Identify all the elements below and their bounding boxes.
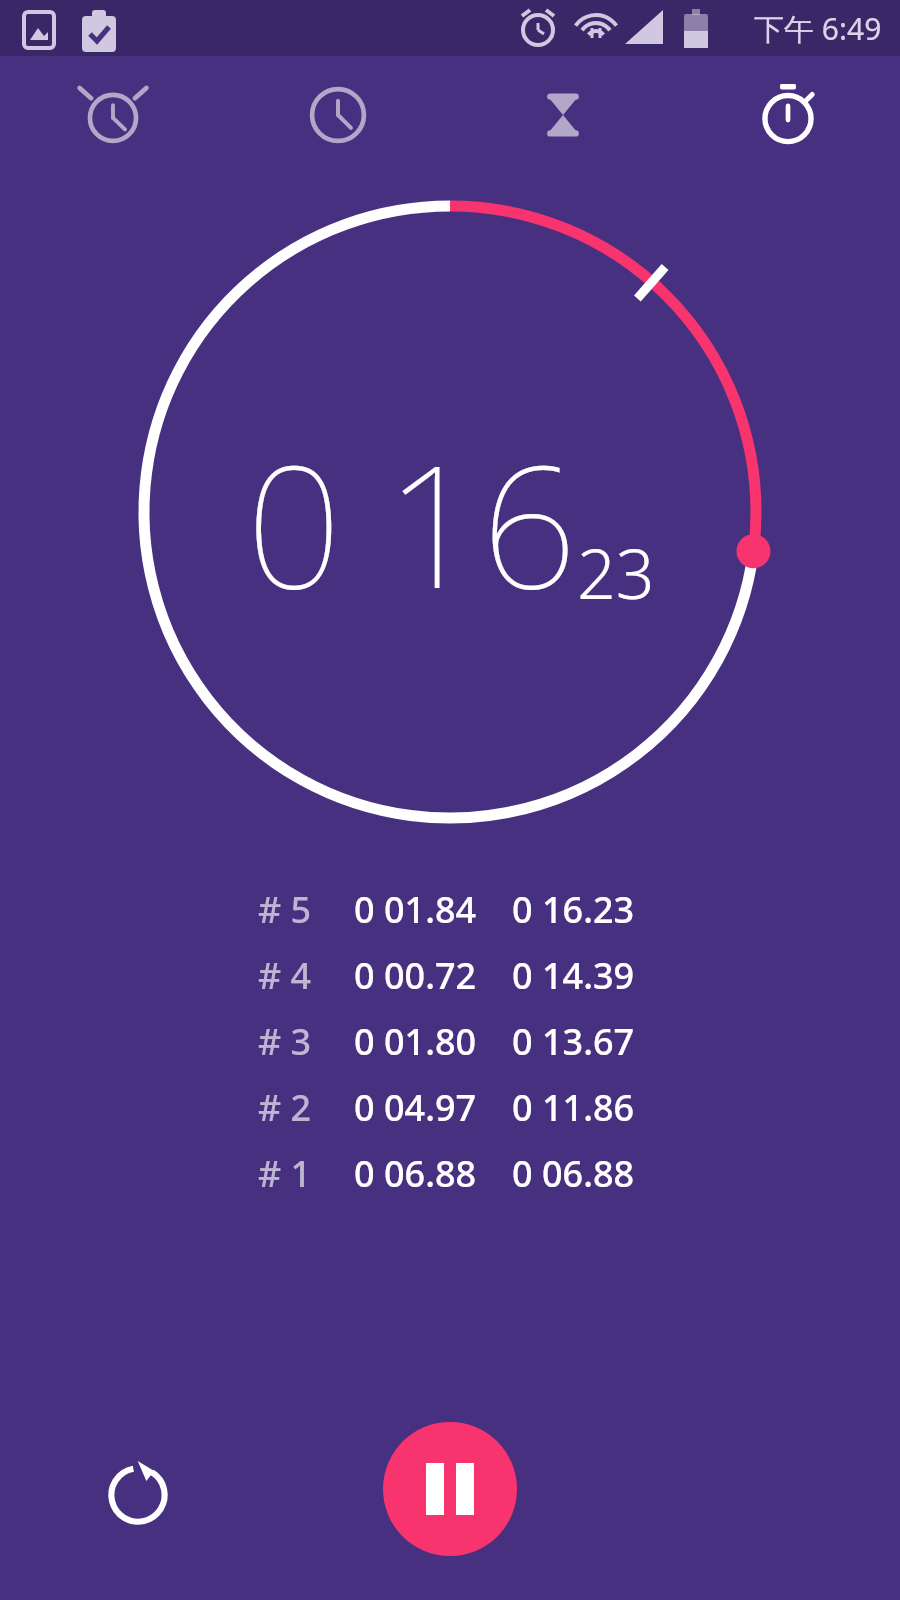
button[interactable]: World clock <box>225 56 450 174</box>
staticText: 0 16.23 <box>512 885 635 934</box>
staticText: # 3 <box>258 1017 354 1066</box>
staticText: 0 00.72 <box>354 951 512 1000</box>
staticText: 23 <box>577 526 655 619</box>
staticText: # 1 <box>258 1149 354 1198</box>
button[interactable]: # 5 <box>0 876 900 942</box>
button[interactable]: Alarm <box>0 56 225 174</box>
staticText: 0 16 <box>246 408 577 637</box>
button[interactable]: # 3 <box>0 1008 900 1074</box>
button[interactable]: # 2 <box>0 1074 900 1140</box>
staticText: # 5 <box>258 885 354 934</box>
button[interactable]: # 4 <box>0 942 900 1008</box>
button[interactable]: Timer <box>450 56 675 174</box>
staticText: 0 01.84 <box>354 885 512 934</box>
staticText: 下午 6:49 <box>754 8 882 49</box>
staticText: 0 11.86 <box>512 1083 635 1132</box>
staticText: 0 01.80 <box>354 1017 512 1066</box>
staticText: 0 04.97 <box>354 1083 512 1132</box>
button[interactable]: # 1 <box>0 1140 900 1206</box>
button[interactable]: Stopwatch <box>675 56 900 174</box>
staticText: # 4 <box>258 951 354 1000</box>
button[interactable]: Reset <box>94 1451 182 1539</box>
staticText: 0 06.88 <box>354 1149 512 1198</box>
staticText: 0 14.39 <box>512 951 635 1000</box>
staticText: 0 06.88 <box>512 1149 635 1198</box>
staticText: 0 13.67 <box>512 1017 635 1066</box>
staticText: # 2 <box>258 1083 354 1132</box>
button[interactable]: Pause <box>383 1422 517 1556</box>
